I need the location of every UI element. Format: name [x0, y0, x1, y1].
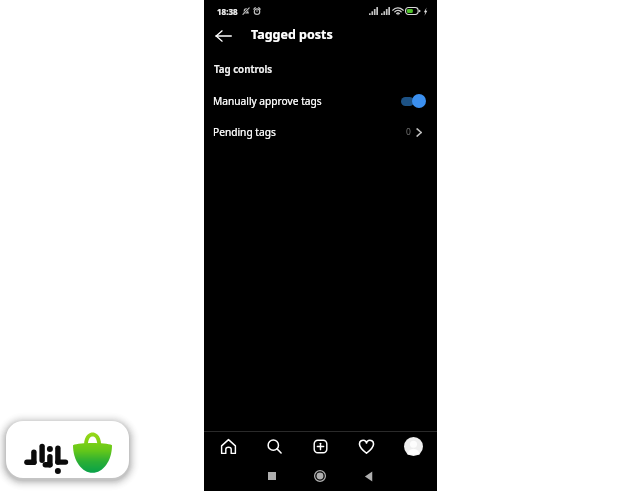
button[interactable]: Back — [355, 463, 381, 489]
staticText: Tag controls — [214, 63, 273, 76]
staticText: 18:38 — [217, 6, 238, 17]
button[interactable]: Pending tags — [204, 117, 437, 147]
staticText: 0 — [406, 126, 411, 138]
button[interactable]: Home — [307, 463, 333, 489]
staticText: Manually approve tags — [213, 94, 322, 108]
button[interactable]: Create — [307, 433, 333, 459]
button[interactable]: Profile — [400, 433, 426, 459]
staticText: Pending tags — [213, 125, 276, 139]
staticText: Tagged posts — [251, 26, 333, 43]
button[interactable]: Recents — [259, 463, 285, 489]
button[interactable]: Manually approve tags — [204, 86, 437, 116]
button[interactable]: Home — [215, 433, 241, 459]
button[interactable]: Search — [261, 433, 287, 459]
button[interactable]: Back — [210, 23, 236, 49]
button[interactable]: Activity — [353, 433, 379, 459]
